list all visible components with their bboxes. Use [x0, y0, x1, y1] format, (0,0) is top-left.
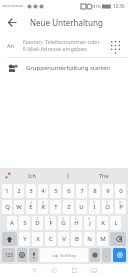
button[interactable]: Y	[19, 232, 30, 246]
button[interactable]: K	[97, 216, 108, 230]
staticText: 3	[30, 200, 33, 205]
button[interactable]: 2	[14, 184, 24, 198]
button[interactable]: J	[84, 216, 95, 230]
staticText: 8	[93, 200, 96, 205]
button[interactable]: Startbildschirm	[47, 264, 61, 277]
staticText: U	[79, 203, 84, 211]
button[interactable]: C	[45, 232, 56, 246]
button[interactable]: Wähltastatur	[104, 34, 126, 56]
button[interactable]: Sticker	[90, 248, 100, 262]
button[interactable]: Zurück	[0, 11, 22, 33]
button[interactable]: P	[115, 200, 126, 214]
button[interactable]: 5	[50, 184, 61, 198]
button[interactable]: 0	[115, 184, 126, 198]
button[interactable]: X	[32, 232, 43, 246]
staticText: P	[119, 203, 123, 211]
staticText: An	[7, 42, 14, 49]
button[interactable]: Umschalt	[2, 232, 17, 246]
button[interactable]: B	[71, 232, 82, 246]
button[interactable]: 3	[26, 184, 36, 198]
button[interactable]: W	[14, 200, 24, 214]
staticText: 3	[29, 187, 33, 195]
staticText: 9	[106, 187, 110, 195]
button[interactable]: An	[0, 33, 128, 57]
button[interactable]: Z	[63, 200, 74, 214]
button[interactable]: Zurück	[27, 264, 41, 277]
button[interactable]: M	[97, 232, 108, 246]
staticText: Z	[67, 203, 71, 211]
button[interactable]: S	[19, 216, 30, 230]
staticText: R	[41, 203, 45, 211]
staticText: 91%	[93, 4, 101, 9]
button[interactable]: U	[76, 200, 87, 214]
staticText: F	[49, 219, 53, 227]
button[interactable]: 7	[76, 184, 87, 198]
button[interactable]: The	[86, 168, 122, 182]
button[interactable]: Leertaste	[40, 248, 88, 262]
staticText: 0	[119, 200, 122, 205]
button[interactable]: O	[102, 200, 113, 214]
button[interactable]: Gruppenunterhaltung starten	[0, 58, 128, 78]
staticText: 5	[54, 187, 58, 195]
staticText: L	[114, 219, 118, 227]
staticText: 4	[42, 200, 45, 205]
staticText: 2	[36, 216, 39, 221]
staticText: G	[61, 219, 66, 227]
button[interactable]: G	[58, 216, 69, 230]
button[interactable]: Übersicht	[67, 264, 81, 277]
button[interactable]: 9	[102, 184, 113, 198]
button[interactable]: N	[84, 232, 95, 246]
staticText: I	[93, 203, 96, 211]
staticText: 5	[75, 216, 78, 221]
staticText: 8	[93, 187, 97, 195]
staticText: A	[10, 219, 14, 227]
staticText: 0	[119, 187, 123, 195]
button[interactable]: D	[32, 216, 43, 230]
button[interactable]: Zahlen	[2, 248, 15, 262]
staticText: K	[101, 219, 105, 227]
button[interactable]: 6	[63, 184, 74, 198]
staticText: 4	[41, 187, 45, 195]
staticText: J	[89, 219, 91, 227]
button[interactable]: Punkt	[102, 248, 111, 262]
button[interactable]: Löschen	[110, 232, 126, 246]
staticText: Namen, Telefonnummer oder	[23, 38, 100, 45]
button[interactable]: Mehr	[0, 168, 14, 182]
button[interactable]: F	[45, 216, 56, 230]
staticText: The	[99, 172, 109, 179]
staticText: 12:36	[113, 3, 125, 9]
button[interactable]: 1	[2, 184, 12, 198]
button[interactable]: Emoji	[17, 248, 27, 262]
staticText: Q	[5, 203, 10, 211]
button[interactable]: V	[58, 232, 69, 246]
staticText: X	[36, 235, 40, 243]
staticText: 7	[80, 187, 84, 195]
staticText: Gruppenunterhaltung starten	[26, 64, 111, 72]
staticText: 9	[106, 200, 109, 205]
button[interactable]: T	[50, 200, 61, 214]
staticText: 3	[49, 216, 52, 221]
staticText: E-Mail-Adresse eingeben	[23, 45, 87, 52]
staticText: I	[67, 172, 69, 179]
button[interactable]: Ich	[14, 168, 50, 182]
button[interactable]: H	[71, 216, 82, 230]
button[interactable]: R	[38, 200, 48, 214]
button[interactable]: 8	[89, 184, 100, 198]
button[interactable]: Spracheingabe	[29, 248, 38, 262]
button[interactable]: Senden	[113, 248, 126, 262]
staticText: 1	[5, 187, 9, 195]
button[interactable]: Q	[2, 200, 12, 214]
button[interactable]: Tastatur ausblenden	[87, 264, 101, 277]
button[interactable]: I	[89, 200, 100, 214]
staticText: Ich	[28, 172, 36, 179]
staticText: SwiftKey	[60, 253, 76, 258]
button[interactable]: E	[26, 200, 36, 214]
button[interactable]: 4	[38, 184, 48, 198]
button[interactable]: L	[110, 216, 121, 230]
staticText: 6	[88, 216, 91, 221]
staticText: T	[54, 203, 58, 211]
staticText: H	[74, 219, 79, 227]
button[interactable]: I	[50, 168, 86, 182]
button[interactable]: A	[7, 216, 17, 230]
staticText: V	[62, 235, 66, 243]
